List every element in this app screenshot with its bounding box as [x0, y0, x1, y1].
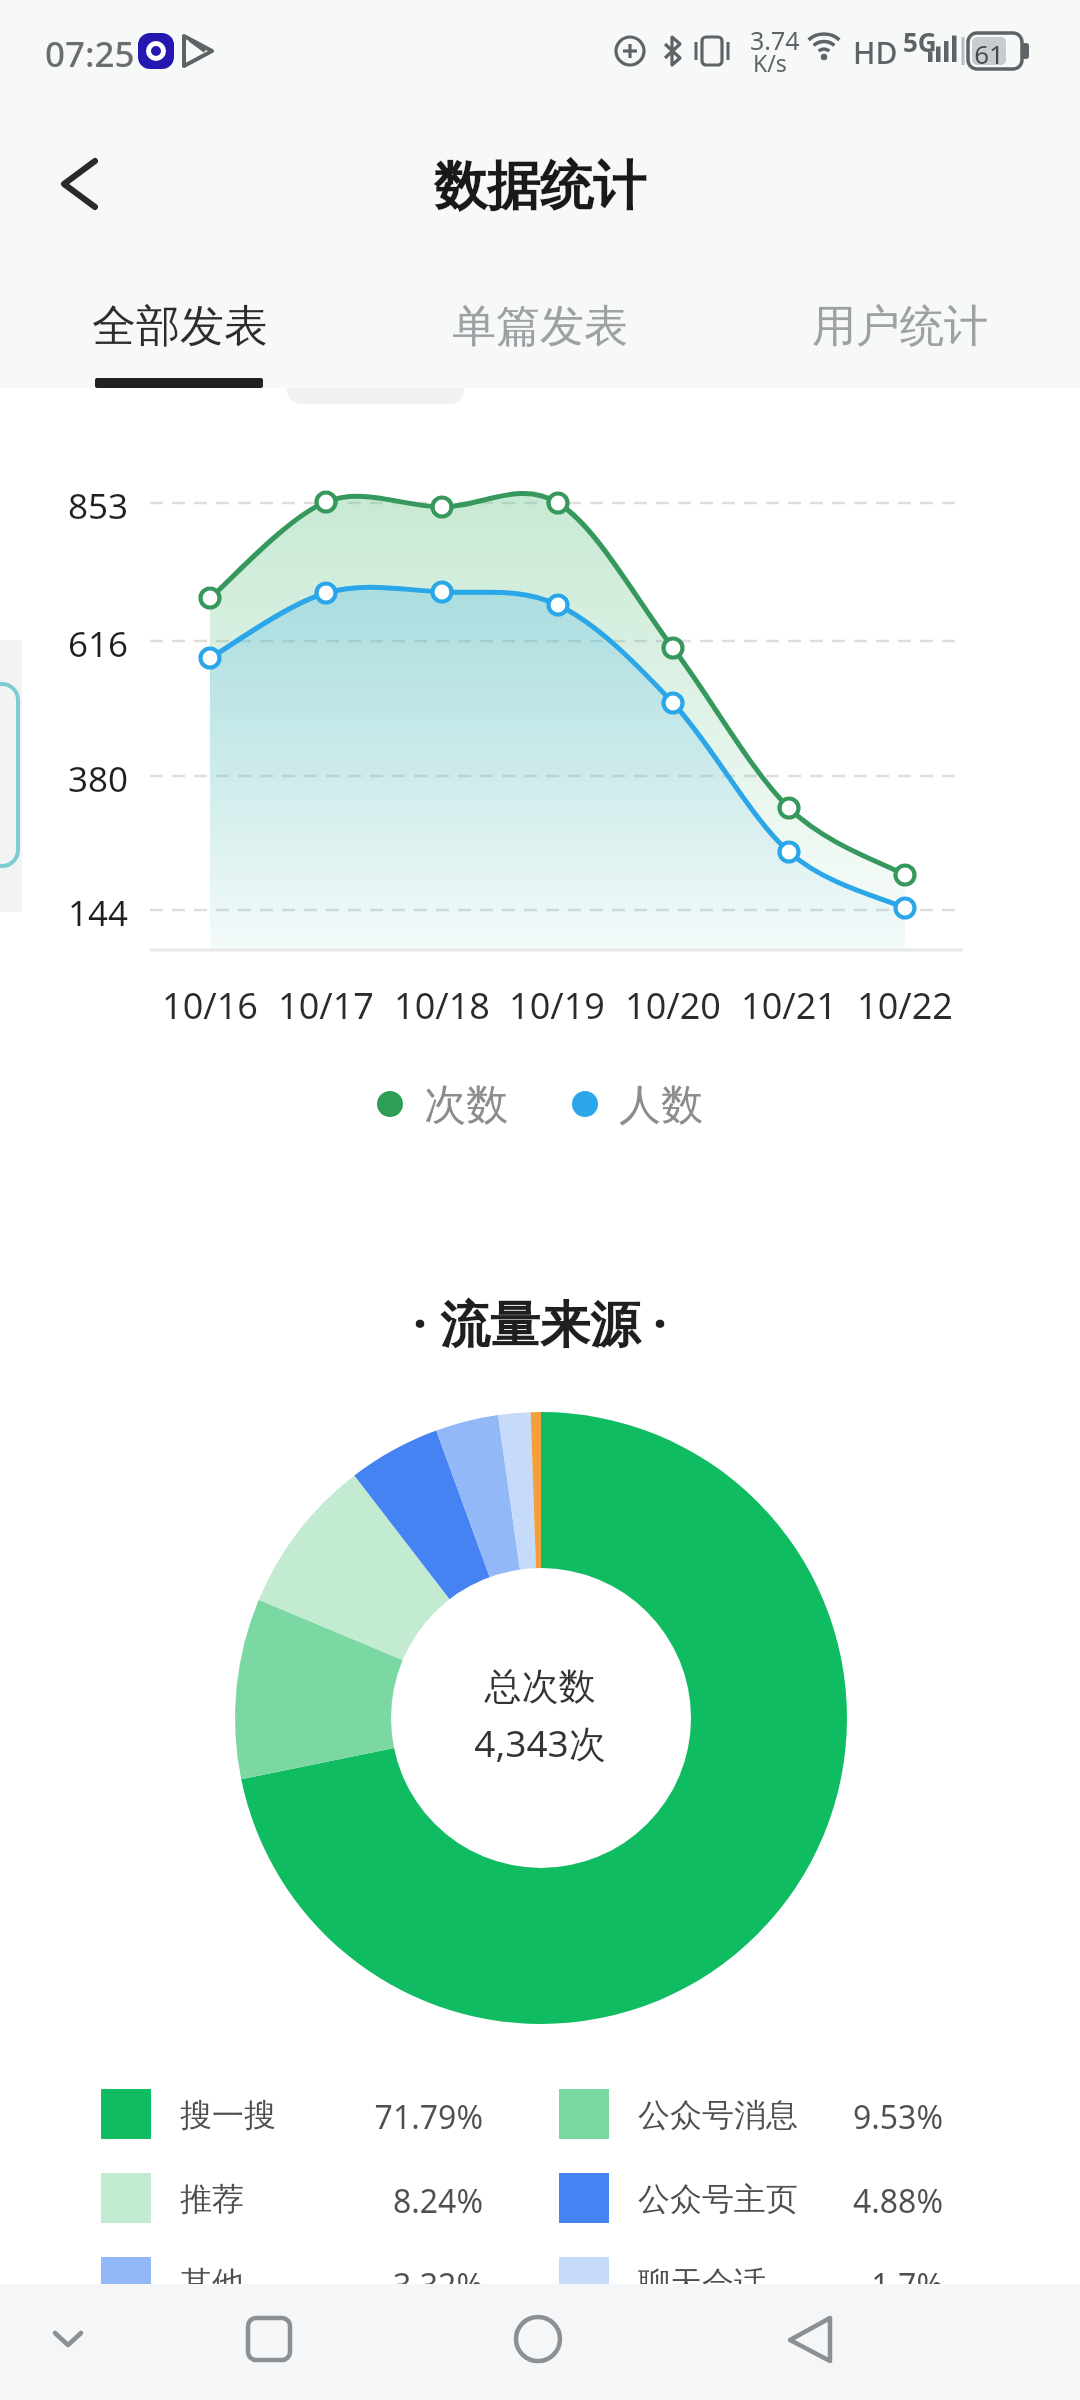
staticText: 搜一搜: [180, 2095, 276, 2135]
staticText: 3.32%: [280, 2263, 483, 2307]
button[interactable]: [498, 2299, 578, 2379]
staticText: 其他: [180, 2263, 244, 2303]
staticText: 总次数: [0, 1663, 1080, 1710]
staticText: 616: [0, 620, 128, 668]
staticText: 10/20: [615, 981, 731, 1030]
staticText: 10/21: [731, 981, 847, 1030]
button[interactable]: [101, 2257, 151, 2307]
staticText: 144: [0, 889, 128, 937]
staticText: 10/16: [152, 981, 268, 1030]
staticText: 10/19: [499, 981, 615, 1030]
button[interactable]: [559, 2257, 609, 2307]
button[interactable]: [28, 2299, 108, 2379]
staticText: 次数: [424, 1079, 508, 1132]
staticText: 61: [969, 36, 1009, 71]
button[interactable]: 单篇发表: [420, 276, 660, 376]
staticText: 10/18: [384, 981, 500, 1030]
staticText: 07:25: [45, 30, 135, 78]
button[interactable]: [770, 2299, 850, 2379]
button[interactable]: [38, 140, 126, 228]
staticText: 全部发表: [92, 299, 268, 354]
button[interactable]: 用户统计: [780, 276, 1020, 376]
staticText: 9.53%: [700, 2095, 943, 2139]
staticText: 人数: [619, 1079, 703, 1132]
staticText: 5G: [903, 24, 937, 59]
staticText: 公众号消息: [638, 2095, 798, 2135]
staticText: K/s: [753, 47, 787, 78]
staticText: 公众号主页: [638, 2179, 798, 2219]
staticText: 853: [0, 482, 128, 530]
staticText: · 流量来源 ·: [0, 1289, 1080, 1357]
staticText: 10/17: [268, 981, 384, 1030]
button[interactable]: [229, 2299, 309, 2379]
staticText: 聊天会话: [638, 2263, 766, 2303]
staticText: 3.74: [750, 23, 800, 57]
staticText: 10/22: [847, 981, 963, 1030]
staticText: 71.79%: [280, 2095, 483, 2139]
staticText: 推荐: [180, 2179, 244, 2219]
staticText: HD: [853, 32, 898, 73]
staticText: 4,343次: [0, 1717, 1080, 1768]
staticText: 单篇发表: [452, 299, 628, 354]
staticText: 8.24%: [280, 2179, 483, 2223]
staticText: 4.88%: [700, 2179, 943, 2223]
staticText: 1.7%: [700, 2263, 943, 2307]
staticText: 380: [0, 755, 128, 803]
button[interactable]: 全部发表: [60, 276, 300, 376]
staticText: 用户统计: [812, 299, 988, 354]
staticText: 数据统计: [0, 153, 1080, 220]
